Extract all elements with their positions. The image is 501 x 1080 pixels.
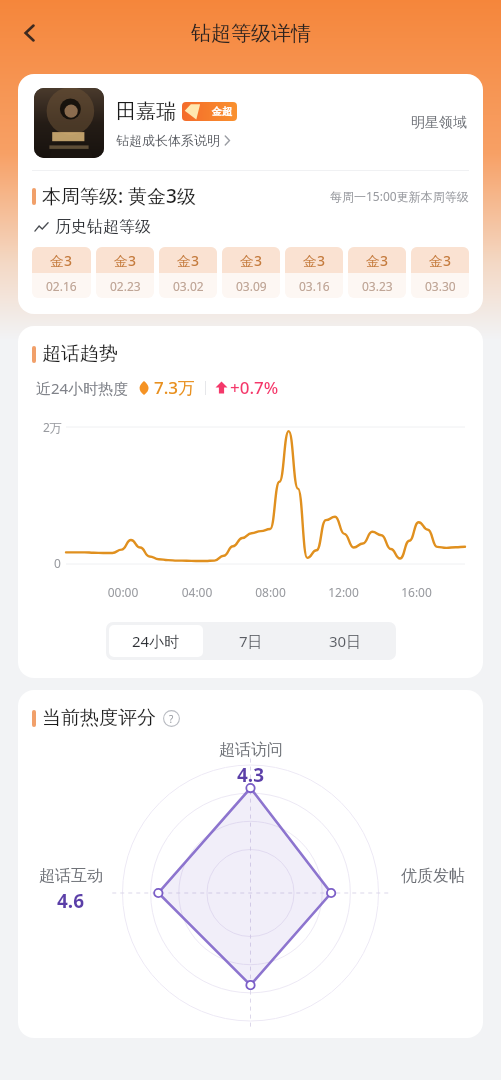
button[interactable]: 金3 — [348, 247, 406, 298]
staticText: 0 — [54, 555, 61, 571]
button[interactable]: 7日 — [203, 625, 298, 657]
staticText: 当前热度评分 — [42, 706, 156, 730]
staticText: 16:00 — [390, 584, 443, 600]
staticText: 历史钻超等级 — [55, 217, 151, 237]
staticText: 优质发帖 — [401, 866, 465, 886]
button[interactable]: Back — [8, 11, 52, 55]
staticText: 24小时 — [132, 631, 180, 651]
staticText: 00:00 — [96, 584, 150, 600]
staticText: 金超 — [212, 105, 232, 118]
staticText: 金3 — [240, 251, 263, 270]
staticText: 超话互动 — [39, 866, 103, 886]
staticText: 12:00 — [317, 584, 370, 600]
staticText: 金3 — [50, 251, 73, 270]
staticText: +0.7% — [230, 376, 279, 399]
staticText: 金3 — [303, 251, 326, 270]
staticText: 03.02 — [173, 278, 204, 294]
button[interactable]: 金3 — [96, 247, 154, 298]
staticText: 明星领域 — [411, 114, 467, 132]
staticText: 田嘉瑞 — [116, 99, 176, 124]
staticText: 03.09 — [236, 278, 267, 294]
staticText: 02.23 — [110, 278, 141, 294]
staticText: 钻超成长体系说明 — [116, 132, 220, 148]
staticText: 4.6 — [57, 888, 85, 914]
button[interactable]: Help — [163, 710, 180, 727]
staticText: 近24小时热度 — [36, 378, 129, 398]
button[interactable]: 金3 — [285, 247, 343, 298]
staticText: 金3 — [177, 251, 200, 270]
staticText: 本周等级: 黄金3级 — [42, 183, 196, 209]
staticText: ? — [169, 712, 174, 726]
staticText: 金3 — [429, 251, 452, 270]
button[interactable]: 24小时 — [109, 625, 203, 657]
staticText: 金3 — [114, 251, 137, 270]
staticText: 03.23 — [362, 278, 393, 294]
staticText: 4.3 — [237, 762, 265, 788]
staticText: 04:00 — [170, 584, 224, 600]
button[interactable]: 金3 — [159, 247, 217, 298]
staticText: 7日 — [239, 631, 263, 651]
staticText: 金3 — [366, 251, 389, 270]
button[interactable]: 金3 — [222, 247, 280, 298]
staticText: 超话访问 — [219, 740, 283, 760]
staticText: 超话趋势 — [42, 342, 118, 366]
staticText: 钻超等级详情 — [191, 21, 311, 46]
button[interactable]: Avatar — [34, 88, 104, 158]
staticText: 30日 — [329, 631, 362, 651]
button[interactable]: 金超 badge — [182, 102, 237, 121]
staticText: 03.30 — [425, 278, 456, 294]
staticText: 03.16 — [299, 278, 330, 294]
button[interactable]: 30日 — [298, 625, 393, 657]
button[interactable]: 金3 — [32, 247, 91, 298]
staticText: 02.16 — [46, 278, 77, 294]
button[interactable]: 金3 — [411, 247, 469, 298]
staticText: 2万 — [43, 419, 62, 435]
staticText: 08:00 — [244, 584, 297, 600]
button[interactable]: 钻超成长体系说明 — [116, 132, 232, 148]
staticText: 每周一15:00更新本周等级 — [330, 188, 469, 204]
staticText: 7.3万 — [154, 376, 196, 399]
